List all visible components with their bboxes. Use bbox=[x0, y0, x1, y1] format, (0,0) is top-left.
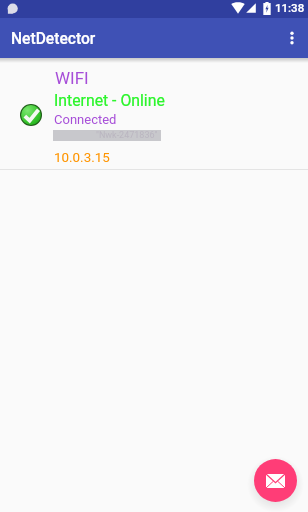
button[interactable]: Send message bbox=[254, 459, 297, 502]
staticText: NetDetector bbox=[11, 30, 96, 48]
staticText: 11:38 bbox=[275, 1, 305, 14]
staticText: WIFI bbox=[55, 68, 89, 88]
staticText: Internet - Online bbox=[54, 91, 165, 110]
staticText: Connected bbox=[54, 112, 117, 127]
button[interactable]: More options bbox=[274, 20, 308, 56]
button[interactable]: WIFI bbox=[0, 63, 308, 169]
staticText: "Nwk-2471836" bbox=[96, 130, 158, 141]
staticText: 10.0.3.15 bbox=[54, 150, 110, 166]
